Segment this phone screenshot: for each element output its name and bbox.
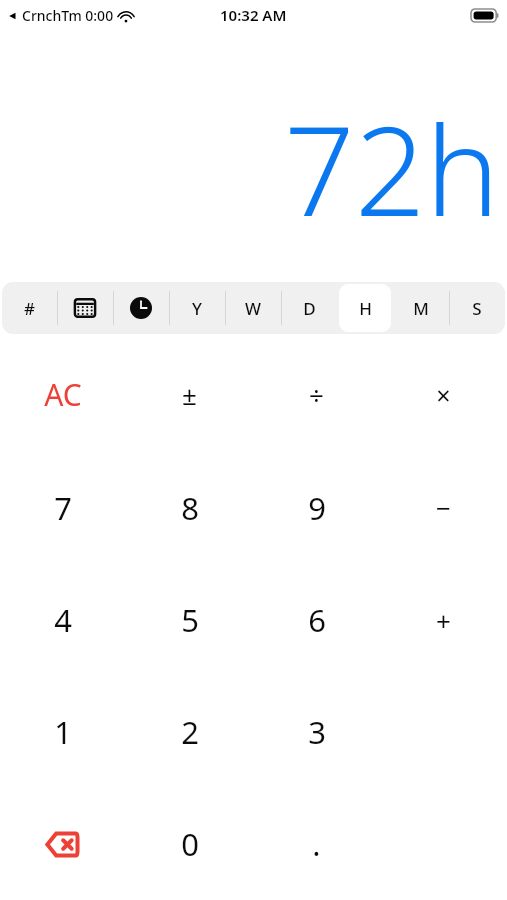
staticText: S [472, 297, 482, 320]
staticText: 6 [308, 599, 326, 641]
button[interactable]: × [380, 338, 507, 451]
staticText: 72h [284, 83, 500, 252]
staticText: H [359, 297, 372, 320]
button[interactable]: 2 [126, 676, 253, 788]
button[interactable]: 8 [126, 451, 253, 564]
button[interactable]: 7 [0, 451, 126, 564]
button[interactable]: D [281, 282, 337, 334]
button[interactable]: Calendar [57, 282, 113, 334]
button[interactable]: Clock [113, 282, 169, 334]
staticText: AC [44, 374, 82, 415]
button[interactable]: H [337, 282, 393, 334]
staticText: ÷ [309, 377, 324, 412]
button[interactable]: ± [126, 338, 253, 451]
button[interactable]: . [253, 788, 380, 900]
button[interactable]: S [449, 282, 505, 334]
button[interactable]: + [380, 564, 507, 676]
staticText: × [436, 378, 451, 412]
button[interactable]: Delete [0, 788, 126, 900]
button[interactable]: ÷ [253, 338, 380, 451]
button[interactable]: 9 [253, 451, 380, 564]
staticText: + [436, 603, 451, 638]
staticText: 1 [54, 711, 72, 753]
button[interactable]: 0 [126, 788, 253, 900]
button[interactable]: AC [0, 338, 126, 451]
staticText: − [436, 490, 451, 525]
button[interactable]: W [225, 282, 281, 334]
button[interactable]: # [2, 282, 57, 334]
staticText: 2 [181, 711, 199, 753]
staticText: 3 [308, 711, 326, 753]
staticText: . [312, 823, 321, 865]
staticText: 5 [181, 599, 199, 641]
button[interactable]: 5 [126, 564, 253, 676]
staticText: M [413, 297, 429, 320]
staticText: Y [192, 297, 202, 320]
button[interactable]: 3 [253, 676, 380, 788]
button[interactable]: M [393, 282, 449, 334]
staticText: 0 [181, 823, 199, 865]
staticText: ± [182, 377, 197, 412]
button[interactable]: 4 [0, 564, 126, 676]
staticText: W [245, 297, 261, 320]
staticText: 7 [54, 487, 72, 529]
button[interactable]: − [380, 451, 507, 564]
button[interactable]: 1 [0, 676, 126, 788]
staticText: 4 [54, 599, 72, 641]
staticText: 9 [308, 487, 326, 529]
button[interactable]: 6 [253, 564, 380, 676]
button[interactable]: Y [169, 282, 225, 334]
staticText: 10:32 AM [220, 5, 287, 25]
staticText: # [24, 297, 35, 320]
staticText: D [303, 297, 316, 320]
staticText: 8 [181, 487, 199, 529]
staticText: CrnchTm 0:00 [22, 6, 114, 25]
